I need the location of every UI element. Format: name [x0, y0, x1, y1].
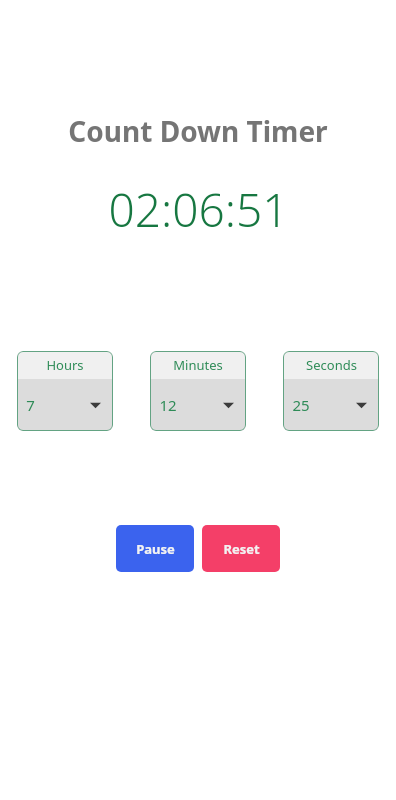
- staticText: 7: [26, 395, 35, 415]
- staticText: Seconds: [306, 356, 357, 374]
- button[interactable]: Pause: [116, 525, 194, 572]
- staticText: 12: [159, 395, 177, 415]
- staticText: Minutes: [173, 356, 223, 374]
- staticText: Pause: [136, 540, 175, 558]
- staticText: Hours: [46, 356, 84, 374]
- button[interactable]: Minutes: [150, 351, 246, 431]
- staticText: 02:06:51: [108, 178, 289, 241]
- button[interactable]: Seconds: [283, 351, 379, 431]
- staticText: 25: [292, 395, 310, 415]
- button[interactable]: Hours: [17, 351, 113, 431]
- button[interactable]: Reset: [202, 525, 280, 572]
- staticText: Reset: [223, 540, 260, 558]
- staticText: Count Down Timer: [68, 112, 328, 150]
